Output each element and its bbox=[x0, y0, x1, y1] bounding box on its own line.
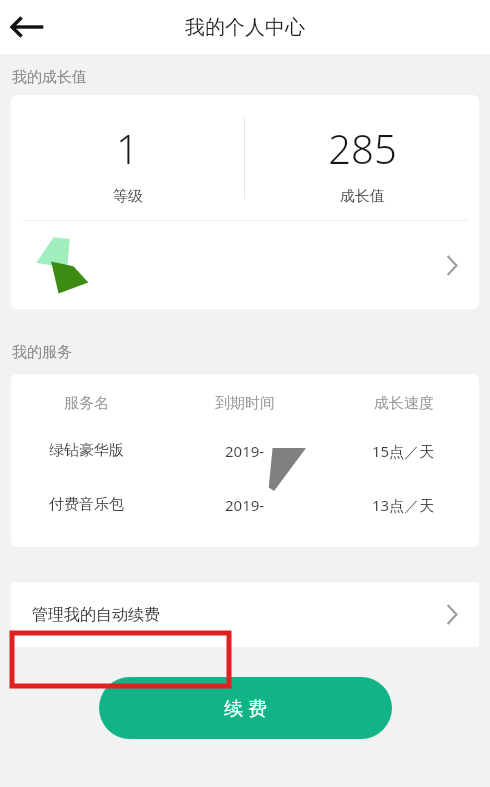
staticText: 付费音乐包 bbox=[49, 495, 124, 514]
staticText: 285 bbox=[328, 121, 397, 175]
staticText: 管理我的自动续费 bbox=[32, 605, 160, 625]
staticText: 我的服务 bbox=[12, 343, 72, 362]
staticText: 2019- bbox=[225, 495, 265, 515]
button[interactable]: 续 费 bbox=[99, 677, 392, 739]
button[interactable]: 管理我的自动续费 bbox=[11, 582, 479, 647]
staticText: 服务名 bbox=[64, 394, 109, 413]
button[interactable]: Back bbox=[0, 0, 54, 54]
staticText: 绿钻豪华版 bbox=[49, 441, 124, 460]
staticText: 成长值 bbox=[340, 187, 385, 206]
staticText: 续 费 bbox=[224, 695, 267, 721]
staticText: 13点／天 bbox=[372, 495, 435, 515]
staticText: 15点／天 bbox=[372, 441, 435, 461]
button[interactable]: 会员等级详情 bbox=[11, 221, 479, 309]
staticText: 我的个人中心 bbox=[185, 15, 305, 40]
staticText: 成长速度 bbox=[374, 394, 434, 413]
staticText: 等级 bbox=[113, 187, 143, 206]
staticText: 1 bbox=[116, 121, 139, 175]
staticText: 到期时间 bbox=[215, 394, 275, 413]
staticText: 2019- bbox=[225, 441, 265, 461]
staticText: 我的成长值 bbox=[12, 68, 87, 87]
